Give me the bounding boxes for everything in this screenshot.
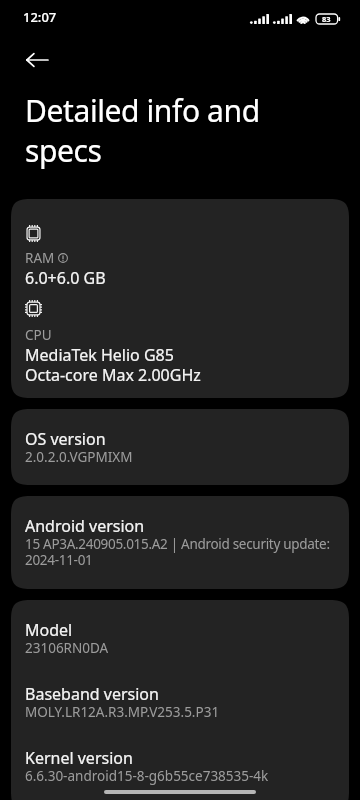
button[interactable]: Back xyxy=(15,34,59,78)
button[interactable]: Model xyxy=(25,620,335,656)
other: Battery 83 percent xyxy=(316,14,341,24)
staticText: 12:07 xyxy=(23,8,57,26)
staticText: MediaTek Helio G85 Octa-core Max 2.00GHz xyxy=(25,345,201,385)
button[interactable]: Android version xyxy=(25,516,335,568)
staticText: 23106RN0DA xyxy=(25,640,109,656)
staticText: Detailed info and specs xyxy=(25,91,280,171)
staticText: 6.0+6.0 GB xyxy=(25,268,106,288)
staticText: 6.6.30-android15-8-g6b55ce738535-4k xyxy=(25,768,269,784)
button[interactable]: Kernel version xyxy=(25,748,335,784)
staticText: 2.0.2.0.VGPMIXM xyxy=(25,449,133,465)
staticText: Android version xyxy=(25,516,145,536)
button[interactable]: CPU xyxy=(25,300,335,385)
staticText: 15 AP3A.240905.015.A2 | Android security… xyxy=(25,536,330,568)
button[interactable]: RAM xyxy=(25,225,335,288)
staticText: Kernel version xyxy=(25,748,133,768)
staticText: OS version xyxy=(25,429,106,449)
staticText: Baseband version xyxy=(25,684,159,704)
staticText: 83 xyxy=(322,14,331,24)
staticText: CPU xyxy=(25,327,52,343)
staticText: Model xyxy=(25,620,73,640)
button[interactable]: OS version xyxy=(25,429,335,465)
staticText: RAM xyxy=(25,250,55,266)
button[interactable]: Baseband version xyxy=(25,684,335,720)
staticText: MOLY.LR12A.R3.MP.V253.5.P31 xyxy=(25,704,220,720)
